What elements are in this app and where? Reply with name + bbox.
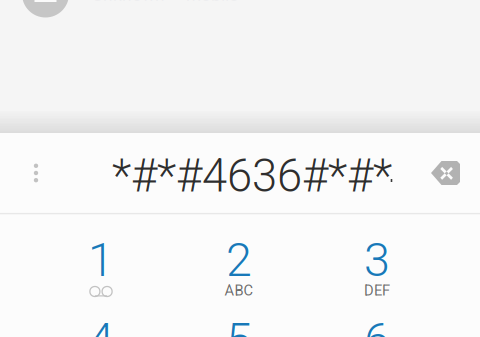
staticText: 4	[88, 313, 114, 337]
button[interactable]: Delete	[415, 137, 477, 209]
staticText: 6	[364, 313, 390, 337]
staticText: ABC	[224, 282, 253, 299]
button[interactable]: 1	[32, 219, 170, 299]
staticText: DEF	[364, 282, 390, 299]
button[interactable]: 2	[170, 219, 308, 299]
button[interactable]: 4	[32, 299, 170, 337]
button[interactable]: More options	[8, 137, 64, 209]
staticText: 5	[226, 313, 252, 337]
button[interactable]: 5	[170, 299, 308, 337]
staticText: 3	[364, 233, 390, 287]
staticText: 1	[88, 233, 114, 287]
staticText: *#*#4636#*#*	[112, 149, 392, 202]
staticText: 2	[226, 233, 252, 287]
button[interactable]: 3	[308, 219, 446, 299]
button[interactable]: 6	[308, 299, 446, 337]
